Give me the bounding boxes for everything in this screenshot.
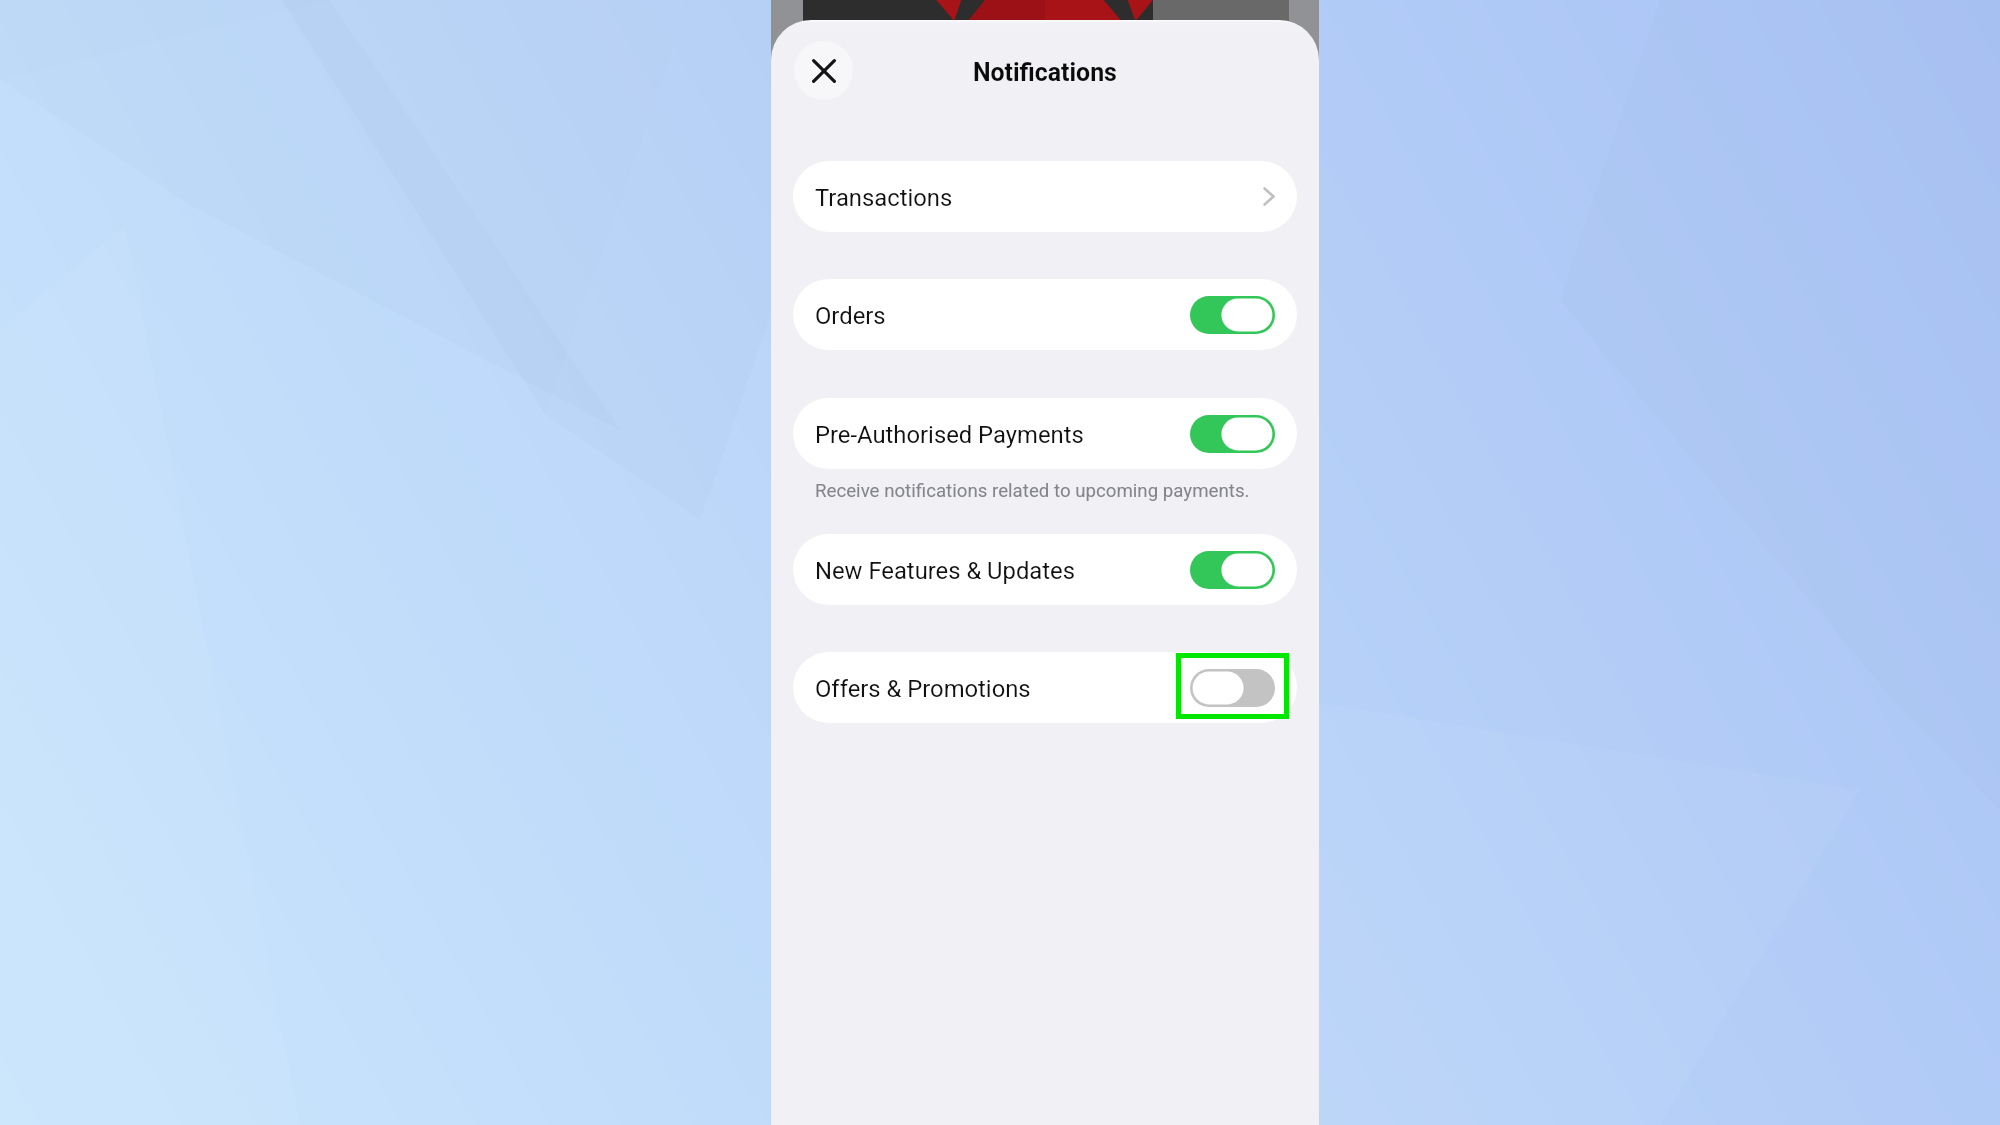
- button[interactable]: Close: [794, 41, 853, 100]
- staticText: Notifications: [973, 58, 1117, 87]
- button[interactable]: Orders: [793, 279, 1297, 350]
- button[interactable]: New Features & Updates: [793, 534, 1297, 605]
- staticText: New Features & Updates: [815, 557, 1075, 585]
- staticText: Offers & Promotions: [815, 675, 1031, 703]
- staticText: Orders: [815, 302, 886, 330]
- button[interactable]: Switch on: [1190, 415, 1275, 453]
- button[interactable]: Switch off: [1190, 669, 1275, 707]
- button[interactable]: Transactions: [793, 161, 1297, 232]
- button[interactable]: Switch on: [1190, 296, 1275, 334]
- button[interactable]: Open transactions: [1263, 187, 1275, 206]
- staticText: Transactions: [815, 184, 953, 212]
- staticText: Pre-Authorised Payments: [815, 421, 1084, 449]
- staticText: Receive notifications related to upcomin…: [815, 480, 1250, 502]
- button[interactable]: Pre-Authorised Payments: [793, 398, 1297, 469]
- button[interactable]: Switch on: [1190, 551, 1275, 589]
- button[interactable]: Offers & Promotions: [793, 652, 1297, 723]
